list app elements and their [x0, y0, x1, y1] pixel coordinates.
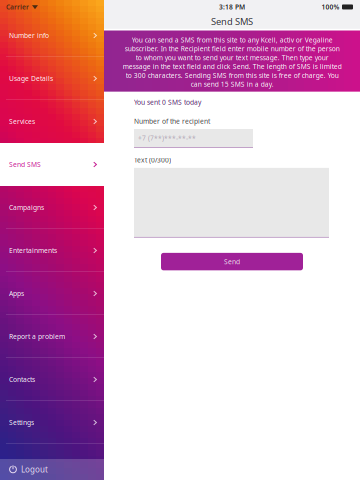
staticText: Entertainments	[9, 246, 57, 255]
staticText: Carrier	[6, 3, 29, 11]
button[interactable]: Logout	[0, 459, 104, 480]
button[interactable]: Usage Details	[0, 57, 104, 100]
staticText: Report a problem	[9, 332, 65, 341]
staticText: +7 (7**)***-**-**	[138, 134, 196, 142]
staticText: Send SMS	[9, 160, 41, 169]
staticText: 3:18 PM	[219, 2, 245, 11]
button[interactable]: Report a problem	[0, 315, 104, 358]
staticText: You sent 0 SMS today	[134, 98, 201, 107]
button[interactable]: Send	[161, 253, 303, 270]
staticText: Contacts	[9, 375, 35, 384]
staticText: Services	[9, 117, 35, 126]
staticText: Send SMS	[211, 15, 253, 28]
staticText: Campaigns	[9, 203, 44, 212]
button[interactable]: Services	[0, 100, 104, 143]
staticText: Number of the recipient	[134, 117, 210, 126]
staticText: Send	[224, 257, 240, 266]
staticText: 100%	[321, 2, 339, 11]
button[interactable]: Entertainments	[0, 229, 104, 272]
staticText: Number info	[9, 31, 49, 40]
staticText: Logout	[21, 464, 48, 475]
staticText: Apps	[9, 289, 24, 298]
staticText: You can send a SMS from this site to any…	[122, 35, 341, 89]
button[interactable]: Send SMS	[0, 143, 104, 186]
button[interactable]: Apps	[0, 272, 104, 315]
button[interactable]: Contacts	[0, 358, 104, 401]
button[interactable]: Number info	[0, 14, 104, 57]
staticText: Usage Details	[9, 74, 53, 83]
staticText: Settings	[9, 418, 34, 427]
button[interactable]: Settings	[0, 401, 104, 444]
button[interactable]: Campaigns	[0, 186, 104, 229]
staticText: Text (0/300)	[134, 155, 171, 164]
